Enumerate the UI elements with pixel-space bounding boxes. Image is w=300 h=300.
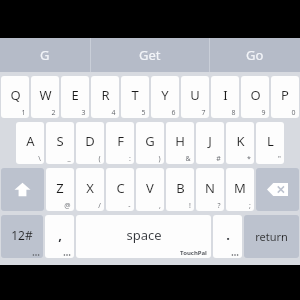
button[interactable]: O [241, 76, 269, 118]
button[interactable]: L [256, 122, 284, 164]
staticText: / [98, 201, 101, 211]
button[interactable]: J [196, 122, 224, 164]
staticText: 6 [171, 108, 176, 118]
button[interactable]: Go [210, 38, 300, 72]
staticText: - [128, 201, 131, 211]
staticText: ? [217, 201, 221, 211]
staticText: ( [98, 154, 101, 164]
staticText: 5 [141, 108, 146, 118]
staticText: Z [56, 179, 64, 197]
button[interactable]: Z [46, 168, 74, 211]
button[interactable]: K [226, 122, 254, 164]
button[interactable]: W [31, 76, 59, 118]
button[interactable]: D [76, 122, 104, 164]
staticText: T [131, 86, 139, 104]
button[interactable]: Backspace [256, 168, 299, 211]
staticText: L [267, 132, 274, 150]
staticText: 7 [201, 108, 206, 118]
staticText: U [190, 86, 200, 104]
button[interactable]: N [196, 168, 224, 211]
staticText: \ [38, 154, 41, 164]
staticText: P [281, 86, 289, 104]
staticText: ! [189, 201, 191, 211]
staticText: G [145, 132, 155, 150]
button[interactable]: Get [91, 38, 209, 72]
staticText: Y [161, 86, 169, 104]
staticText: 12# [11, 227, 33, 243]
staticText: Q [10, 86, 21, 104]
staticText: 8 [231, 108, 236, 118]
button[interactable]: Shift [1, 168, 44, 211]
staticText: J [208, 132, 212, 150]
staticText: " [278, 154, 281, 164]
button[interactable]: B [166, 168, 194, 211]
button[interactable]: E [61, 76, 89, 118]
staticText: A [26, 132, 35, 150]
button[interactable]: T [121, 76, 149, 118]
staticText: . [226, 226, 230, 244]
staticText: , [159, 201, 161, 211]
button[interactable]: . [213, 215, 242, 258]
staticText: W [39, 86, 52, 104]
staticText: E [71, 86, 79, 104]
staticText: Go [246, 46, 264, 64]
staticText: I [223, 86, 228, 104]
button[interactable]: G [0, 38, 90, 72]
staticText: @ [64, 201, 71, 211]
staticText: F [117, 132, 124, 150]
staticText: 1 [21, 108, 26, 118]
staticText: O [250, 86, 261, 104]
staticText: : [129, 154, 131, 164]
button[interactable]: V [136, 168, 164, 211]
staticText: R [101, 86, 110, 104]
staticText: space [126, 226, 162, 244]
button[interactable]: P [271, 76, 299, 118]
button[interactable]: C [106, 168, 134, 211]
button[interactable]: S [46, 122, 74, 164]
staticText: G [40, 46, 50, 64]
staticText: H [175, 132, 185, 150]
button[interactable]: 12# [1, 215, 43, 258]
button[interactable]: R [91, 76, 119, 118]
staticText: TouchPal [180, 249, 207, 257]
button[interactable]: M [226, 168, 254, 211]
staticText: B [176, 179, 185, 197]
staticText: S [56, 132, 64, 150]
staticText: & [185, 154, 191, 164]
button[interactable]: return [244, 215, 299, 258]
button[interactable]: Y [151, 76, 179, 118]
staticText: ) [158, 154, 161, 164]
staticText: 0 [291, 108, 296, 118]
button[interactable]: U [181, 76, 209, 118]
staticText: M [234, 179, 246, 197]
staticText: X [86, 179, 94, 197]
staticText: D [85, 132, 95, 150]
button[interactable]: X [76, 168, 104, 211]
button[interactable]: I [211, 76, 239, 118]
staticText: return [255, 229, 288, 244]
staticText: , [58, 226, 62, 244]
button[interactable]: G [136, 122, 164, 164]
staticText: 2 [51, 108, 56, 118]
staticText: 9 [261, 108, 266, 118]
staticText: _ [67, 154, 71, 164]
staticText: * [247, 154, 251, 164]
staticText: K [236, 132, 245, 150]
button[interactable]: , [45, 215, 74, 258]
button[interactable]: A [16, 122, 44, 164]
staticText: C [116, 179, 125, 197]
staticText: 4 [111, 108, 116, 118]
button[interactable]: Q [1, 76, 29, 118]
staticText: N [205, 179, 215, 197]
staticText: # [216, 154, 221, 164]
staticText: V [146, 179, 154, 197]
staticText: ; [249, 201, 251, 211]
button[interactable]: space [76, 215, 211, 258]
staticText: 3 [81, 108, 86, 118]
button[interactable]: F [106, 122, 134, 164]
staticText: Get [139, 46, 161, 64]
button[interactable]: H [166, 122, 194, 164]
